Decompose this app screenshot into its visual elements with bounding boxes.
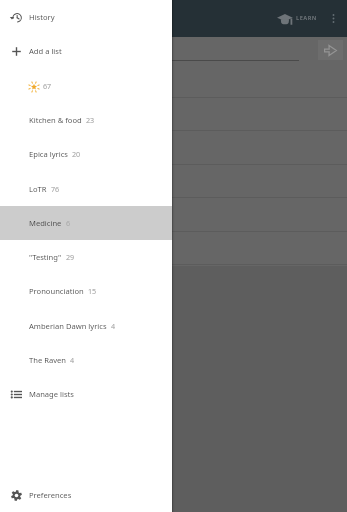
staticText: 29 [66, 252, 75, 262]
button[interactable]: Medicine [0, 206, 172, 240]
staticText: Epica lyrics [29, 149, 68, 159]
button[interactable]: The Raven [0, 343, 172, 377]
staticText: 6 [66, 218, 71, 228]
staticText: Pronounciation [29, 286, 84, 296]
button[interactable]: Amberian Dawn lyrics [0, 309, 172, 343]
staticText: Preferences [29, 490, 72, 500]
staticText: 23 [86, 115, 95, 125]
button[interactable] [0, 98, 347, 132]
button[interactable]: Add a list [0, 34, 172, 68]
staticText: 4 [70, 355, 75, 365]
staticText: 15 [88, 286, 97, 296]
staticText: Add a list [29, 46, 62, 56]
button[interactable]: Epica lyrics [0, 137, 172, 171]
staticText: 4 [111, 321, 116, 331]
button[interactable]: More options [325, 6, 342, 31]
staticText: "Testing" [29, 252, 62, 262]
staticText: 76 [51, 184, 60, 194]
button[interactable]: Preferences [0, 478, 172, 512]
staticText: History [29, 12, 55, 22]
button[interactable]: 67 [0, 69, 172, 103]
staticText: The Raven [29, 355, 66, 365]
button[interactable] [0, 165, 347, 199]
button[interactable] [0, 64, 347, 98]
button[interactable] [0, 232, 347, 266]
button[interactable]: Learn [277, 10, 317, 26]
staticText: Medicine [29, 218, 62, 228]
button[interactable]: LoTR [0, 172, 172, 206]
button[interactable]: Pronounciation [0, 274, 172, 308]
staticText: LoTR [29, 184, 47, 194]
button[interactable]: Submit [318, 40, 343, 60]
staticText: Kitchen & food [29, 115, 82, 125]
staticText: 67 [43, 81, 52, 91]
button[interactable]: Manage lists [0, 377, 172, 411]
button[interactable] [0, 198, 347, 232]
staticText: 20 [72, 149, 81, 159]
button[interactable]: Kitchen & food [0, 103, 172, 137]
staticText: Manage lists [29, 389, 74, 399]
button[interactable] [0, 131, 347, 165]
staticText: LEARN [296, 14, 317, 22]
button[interactable]: "Testing" [0, 240, 172, 274]
button[interactable]: History [0, 0, 172, 34]
staticText: Amberian Dawn lyrics [29, 321, 107, 331]
